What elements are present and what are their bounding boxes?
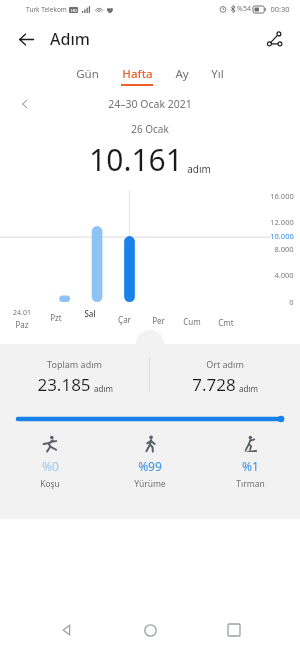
staticText: Koşu <box>40 478 60 490</box>
staticText: 10.161 <box>89 139 183 180</box>
staticText: Tırman <box>236 478 265 490</box>
staticText: Yıl <box>211 66 224 82</box>
staticText: adım <box>187 162 211 176</box>
button[interactable]: Home <box>133 613 167 647</box>
staticText: 26 Ocak <box>131 122 169 136</box>
button[interactable]: Share <box>258 23 290 55</box>
button[interactable]: Hafta <box>121 66 153 86</box>
button[interactable]: Gün <box>76 66 99 86</box>
staticText: %1 <box>242 458 259 474</box>
staticText: 4.000 <box>274 270 294 280</box>
staticText: adım <box>239 383 258 394</box>
staticText: Ay <box>175 66 189 82</box>
staticText: Adım <box>50 28 90 50</box>
button[interactable]: %1 <box>200 434 300 490</box>
staticText: 10.000 <box>270 231 294 241</box>
staticText: Turk Telekom <box>26 5 67 14</box>
button[interactable]: Ort adım <box>150 358 300 396</box>
staticText: 24.01 <box>13 308 31 318</box>
staticText: 23.185 <box>37 373 91 396</box>
staticText: Gün <box>76 66 99 82</box>
staticText: Hafta <box>122 66 153 82</box>
staticText: %0 <box>42 458 59 474</box>
staticText: Cum <box>183 316 201 327</box>
staticText: Toplam adım <box>47 358 102 370</box>
staticText: 24–30 Ocak 2021 <box>108 97 192 111</box>
staticText: 12.000 <box>270 217 294 227</box>
staticText: Sal <box>84 308 96 319</box>
staticText: Yürüme <box>134 478 166 490</box>
staticText: Çar <box>118 314 131 325</box>
staticText: Pzt <box>50 312 62 323</box>
staticText: Per <box>152 315 165 326</box>
staticText: HD <box>71 8 77 13</box>
staticText: 16.000 <box>270 191 294 201</box>
staticText: adım <box>94 383 113 394</box>
button[interactable]: %99 <box>100 434 200 490</box>
staticText: 8.000 <box>274 244 294 254</box>
staticText: Paz <box>15 319 29 330</box>
staticText: %54 <box>237 4 251 14</box>
button[interactable]: Yıl <box>211 66 224 86</box>
button[interactable]: Previous week <box>14 93 36 115</box>
staticText: %99 <box>138 458 162 474</box>
staticText: 7.728 <box>192 373 236 396</box>
staticText: 00:30 <box>270 4 290 14</box>
button[interactable]: %0 <box>0 434 100 490</box>
button[interactable]: Toplam adım <box>0 358 149 396</box>
button[interactable]: Back <box>50 613 84 647</box>
staticText: Cmt <box>218 317 234 328</box>
staticText: Ort adım <box>206 358 244 370</box>
staticText: 0 <box>289 297 294 307</box>
button[interactable]: Recents <box>217 613 251 647</box>
button[interactable]: Back <box>10 23 42 55</box>
button[interactable]: Ay <box>175 66 189 86</box>
